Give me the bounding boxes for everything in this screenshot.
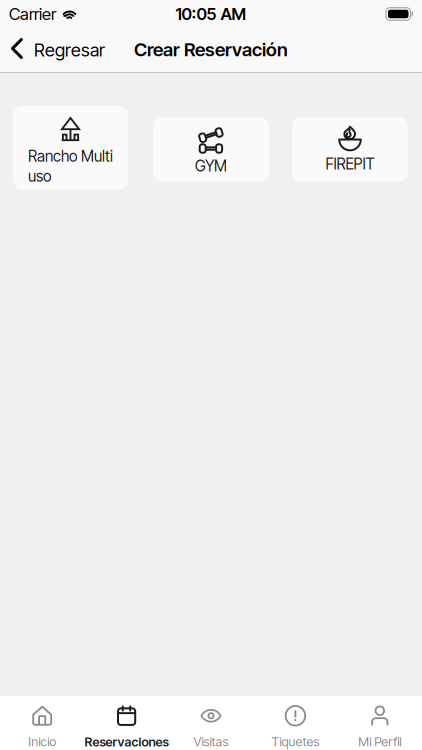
- button[interactable]: Rancho Multi: [13, 106, 128, 190]
- staticText: Inicio: [28, 734, 56, 749]
- staticText: Mi Perfil: [358, 734, 401, 749]
- staticText: GYM: [195, 156, 227, 175]
- staticText: Regresar: [34, 39, 105, 61]
- staticText: FIREPIT: [325, 154, 374, 173]
- button[interactable]: Visitas: [169, 695, 253, 750]
- button[interactable]: Inicio: [0, 695, 84, 750]
- staticText: Crear Reservación: [134, 38, 288, 61]
- staticText: Visitas: [193, 734, 228, 749]
- button[interactable]: GYM: [153, 117, 269, 182]
- button[interactable]: FIREPIT: [292, 117, 408, 182]
- staticText: Rancho Multi: [28, 147, 113, 165]
- staticText: 10:05 AM: [175, 4, 246, 24]
- staticText: Tiquetes: [271, 734, 319, 749]
- button[interactable]: Tiquetes: [253, 695, 338, 750]
- staticText: uso: [28, 167, 51, 185]
- staticText: Reservaciones: [85, 734, 169, 750]
- button[interactable]: Regresar: [0, 28, 117, 72]
- button[interactable]: Reservaciones: [84, 695, 169, 750]
- staticText: Carrier: [9, 4, 56, 24]
- button[interactable]: Mi Perfil: [338, 695, 422, 750]
